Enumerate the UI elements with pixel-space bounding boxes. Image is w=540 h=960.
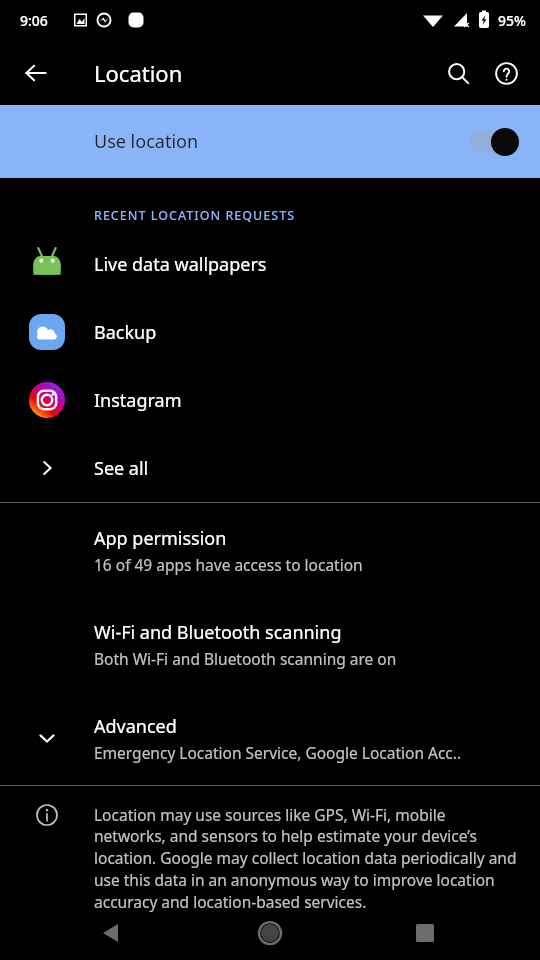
staticText: Live data wallpapers <box>94 252 267 277</box>
staticText: Emergency Location Service, Google Locat… <box>94 742 462 763</box>
button[interactable]: Search <box>434 49 482 97</box>
staticText: Both Wi-Fi and Bluetooth scanning are on <box>94 648 397 669</box>
button[interactable]: Help <box>482 49 530 97</box>
button[interactable]: Wi-Fi and Bluetooth scanning <box>0 597 540 691</box>
button[interactable]: Back <box>12 49 60 97</box>
staticText: Backup <box>94 320 157 345</box>
button[interactable]: See all <box>0 434 540 502</box>
button[interactable]: Home <box>246 908 294 956</box>
staticText: Location <box>94 58 183 88</box>
button[interactable]: Live data wallpapers <box>0 230 540 298</box>
button[interactable]: Advanced <box>0 691 540 785</box>
staticText: 95% <box>498 11 526 30</box>
staticText: Location may use sources like GPS, Wi-Fi… <box>94 804 520 912</box>
button[interactable]: App permission <box>0 503 540 597</box>
button[interactable]: Instagram <box>0 366 540 434</box>
staticText: Advanced <box>94 714 177 739</box>
staticText: App permission <box>94 526 227 551</box>
staticText: 16 of 49 apps have access to location <box>94 554 363 575</box>
button[interactable]: Backup <box>0 298 540 366</box>
staticText: 9:06 <box>20 11 48 30</box>
button[interactable]: Back <box>88 908 136 956</box>
staticText: Use location <box>94 129 466 154</box>
staticText: Instagram <box>94 388 182 413</box>
staticText: Wi-Fi and Bluetooth scanning <box>94 620 342 645</box>
staticText: See all <box>94 456 149 481</box>
staticText: RECENT LOCATION REQUESTS <box>94 207 296 224</box>
button[interactable]: Use location <box>0 105 540 178</box>
button[interactable]: Recent apps <box>401 908 449 956</box>
